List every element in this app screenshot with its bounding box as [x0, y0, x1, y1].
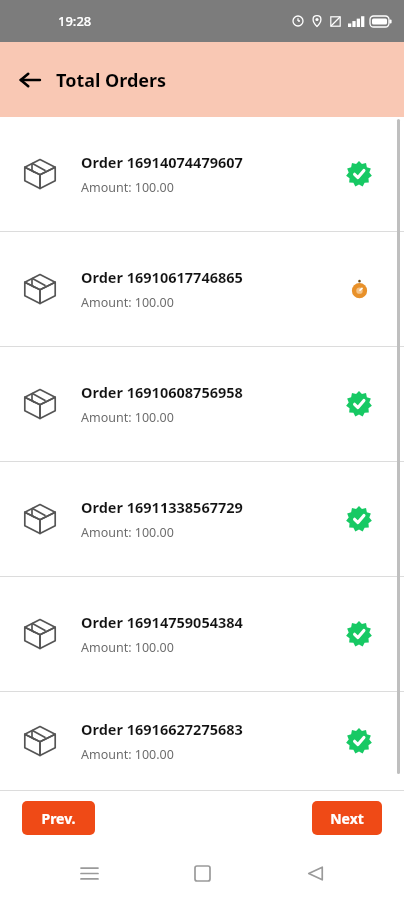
button[interactable]: Home	[178, 849, 226, 897]
button[interactable]: Recent apps	[65, 849, 113, 897]
button[interactable]: Order 16916627275683	[0, 692, 404, 790]
staticText: Order 16910608756958	[81, 382, 243, 402]
staticText: Total Orders	[56, 68, 167, 93]
staticText: Amount: 100.00	[81, 524, 174, 541]
button[interactable]: Next	[312, 801, 382, 835]
staticText: Amount: 100.00	[81, 639, 174, 656]
staticText: 19:28	[58, 12, 92, 30]
button[interactable]: Order 16914759054384	[0, 577, 404, 691]
button[interactable]: Order 16911338567729	[0, 462, 404, 576]
staticText: Order 16914759054384	[81, 612, 243, 632]
button[interactable]: Back	[291, 849, 339, 897]
staticText: Order 16914074479607	[81, 152, 243, 172]
staticText: Amount: 100.00	[81, 294, 174, 311]
button[interactable]: Prev.	[22, 801, 95, 835]
button[interactable]: Order 16914074479607	[0, 117, 404, 231]
staticText: Order 16916627275683	[81, 719, 243, 739]
staticText: Next	[330, 809, 364, 828]
button[interactable]: Order 16910608756958	[0, 347, 404, 461]
button[interactable]: Back	[14, 64, 46, 96]
staticText: Order 16911338567729	[81, 497, 243, 517]
staticText: Amount: 100.00	[81, 746, 174, 763]
staticText: Order 16910617746865	[81, 267, 243, 287]
button[interactable]: Order 16910617746865	[0, 232, 404, 346]
staticText: Prev.	[41, 809, 76, 828]
staticText: Amount: 100.00	[81, 179, 174, 196]
staticText: Amount: 100.00	[81, 409, 174, 426]
